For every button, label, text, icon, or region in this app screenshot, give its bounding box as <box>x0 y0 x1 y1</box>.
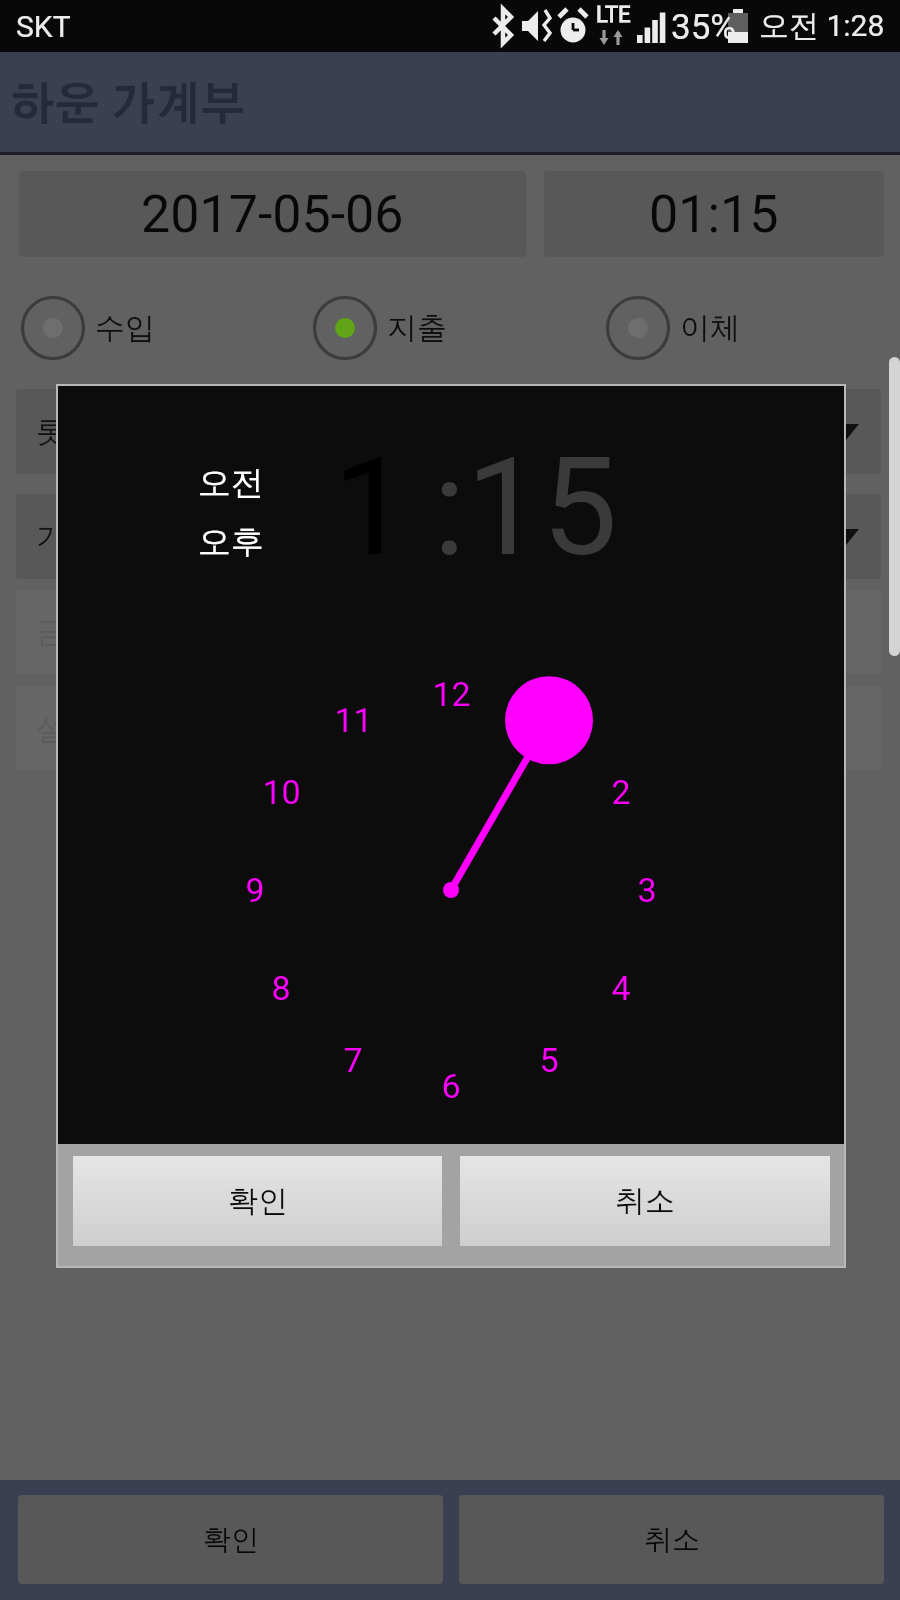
staticText: 9 <box>245 870 265 910</box>
button[interactable]: 2017-05-06 <box>19 171 526 257</box>
staticText: 기타 <box>36 518 96 556</box>
button[interactable]: 15 <box>472 438 612 578</box>
button[interactable]: 11 <box>318 692 388 748</box>
button[interactable]: 2 <box>586 764 656 820</box>
staticText: 8 <box>271 968 291 1008</box>
staticText: 금액 <box>36 613 96 651</box>
button[interactable]: 7 <box>318 1032 388 1088</box>
staticText: 설명 <box>36 710 96 748</box>
button[interactable]: 취소 <box>459 1495 884 1584</box>
staticText: 오전 1:28 <box>759 7 885 45</box>
button[interactable]: 9 <box>220 862 290 918</box>
button[interactable]: 4 <box>586 960 656 1016</box>
staticText: 3 <box>637 870 657 910</box>
button[interactable]: 확인 <box>73 1156 442 1246</box>
button[interactable]: 기타 <box>16 494 881 579</box>
staticText: 확인 <box>203 1522 259 1557</box>
staticText: 수입 <box>95 309 155 347</box>
button[interactable]: 지출 <box>312 295 447 361</box>
staticText: 11 <box>334 700 373 740</box>
staticText: 01:15 <box>649 184 779 245</box>
staticText: 4 <box>611 968 631 1008</box>
staticText: 지출 <box>387 309 447 347</box>
staticText: 1 <box>333 429 409 587</box>
staticText: 롯데 <box>36 413 96 451</box>
button[interactable]: 1 <box>326 438 416 578</box>
button[interactable]: 금액 <box>16 590 881 673</box>
button[interactable]: 확인 <box>18 1495 443 1584</box>
staticText: 확인 <box>228 1182 288 1220</box>
staticText: 6 <box>441 1066 461 1106</box>
button[interactable]: 1 <box>514 692 584 748</box>
staticText: 10 <box>262 772 301 812</box>
staticText: SKT <box>16 9 71 44</box>
button[interactable]: 오전 <box>171 459 291 507</box>
button[interactable]: 5 <box>514 1032 584 1088</box>
staticText: 오전 <box>198 462 264 504</box>
other: Open dropdown <box>833 529 859 545</box>
other: Open dropdown <box>833 424 859 440</box>
button[interactable]: 8 <box>246 960 316 1016</box>
staticText: 취소 <box>644 1522 700 1557</box>
button[interactable]: 이체 <box>605 295 740 361</box>
staticText: : <box>433 429 466 587</box>
button[interactable]: 수입 <box>20 295 155 361</box>
button[interactable]: 롯데 <box>16 389 881 474</box>
staticText: 15 <box>466 429 618 587</box>
staticText: 오후 <box>198 521 264 563</box>
button[interactable]: 오후 <box>171 518 291 566</box>
staticText: 35% <box>671 7 736 48</box>
button[interactable]: 10 <box>246 764 316 820</box>
staticText: 12 <box>432 674 471 714</box>
button[interactable]: 12 <box>416 666 486 722</box>
staticText: 하운 가계부 <box>10 84 246 129</box>
staticText: 7 <box>343 1040 363 1080</box>
button[interactable]: 3 <box>612 862 682 918</box>
button[interactable]: 설명 <box>16 687 881 770</box>
button[interactable]: 취소 <box>460 1156 830 1246</box>
button[interactable]: 01:15 <box>544 171 884 257</box>
staticText: LTE <box>596 2 631 28</box>
staticText: 취소 <box>615 1182 675 1220</box>
staticText: 5 <box>539 1040 559 1080</box>
staticText: 2 <box>611 772 631 812</box>
staticText: 이체 <box>680 309 740 347</box>
staticText: 2017-05-06 <box>141 184 404 245</box>
button[interactable]: 6 <box>416 1058 486 1114</box>
